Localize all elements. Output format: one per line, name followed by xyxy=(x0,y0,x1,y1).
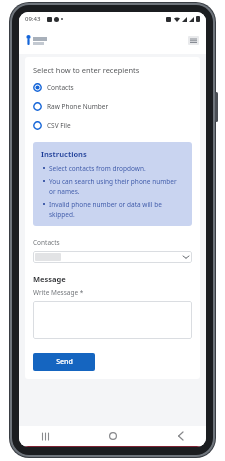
staticText: Raw Phone Number xyxy=(47,102,109,111)
button[interactable]: Send xyxy=(33,353,95,371)
staticText: You can search using their phone number … xyxy=(49,177,184,196)
staticText: Instructions xyxy=(41,149,87,159)
button[interactable]: Recent apps xyxy=(37,428,53,444)
staticText: Message xyxy=(33,274,66,284)
button[interactable] xyxy=(33,251,192,263)
button[interactable] xyxy=(33,301,192,339)
staticText: 09:43 xyxy=(25,15,41,23)
button[interactable]: CSV File xyxy=(33,120,192,131)
button[interactable]: Raw Phone Number xyxy=(33,101,192,112)
staticText: Select how to enter recepients xyxy=(33,65,140,75)
staticText: Invalid phone number or data will be ski… xyxy=(49,200,184,219)
button[interactable]: Home xyxy=(105,428,121,444)
staticText: Write Message * xyxy=(33,288,84,297)
staticText: Send xyxy=(56,357,73,367)
staticText: Select contacts from dropdown. xyxy=(49,164,146,173)
staticText: Contacts xyxy=(33,238,60,247)
button[interactable]: Back xyxy=(172,428,188,444)
staticText: CSV File xyxy=(47,121,71,130)
staticText: Contacts xyxy=(47,83,74,92)
button[interactable]: Contacts xyxy=(33,82,192,93)
button[interactable]: Menu xyxy=(188,36,199,45)
